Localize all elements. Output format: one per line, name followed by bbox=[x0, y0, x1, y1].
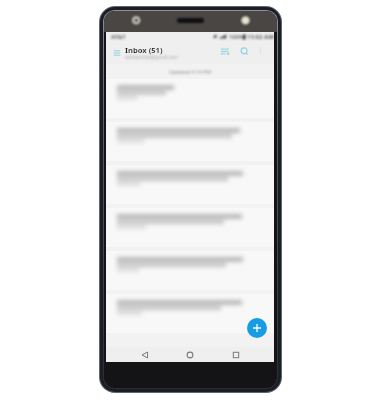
button[interactable] bbox=[106, 122, 274, 161]
button[interactable] bbox=[106, 251, 274, 290]
button[interactable]: Sort bbox=[219, 45, 232, 58]
button[interactable] bbox=[106, 165, 274, 204]
button[interactable] bbox=[106, 208, 274, 247]
staticText: whitwinluke@gmail.com bbox=[125, 54, 178, 60]
button[interactable]: Navigation menu bbox=[110, 45, 124, 61]
button[interactable]: Back bbox=[138, 348, 152, 362]
staticText: 11:02 AM bbox=[247, 33, 274, 41]
button[interactable]: Recent apps bbox=[229, 348, 243, 362]
staticText: Updated 4:14 PM bbox=[169, 68, 211, 75]
staticText: Inbox (51) bbox=[125, 45, 163, 55]
staticText: AT&T bbox=[111, 33, 126, 41]
staticText: 100% bbox=[229, 33, 244, 41]
button[interactable] bbox=[106, 294, 274, 333]
button[interactable]: Home bbox=[183, 348, 197, 362]
button[interactable] bbox=[106, 79, 274, 118]
button[interactable]: Compose bbox=[247, 318, 267, 338]
button[interactable]: Search bbox=[238, 45, 251, 58]
button[interactable]: More options bbox=[255, 45, 266, 56]
